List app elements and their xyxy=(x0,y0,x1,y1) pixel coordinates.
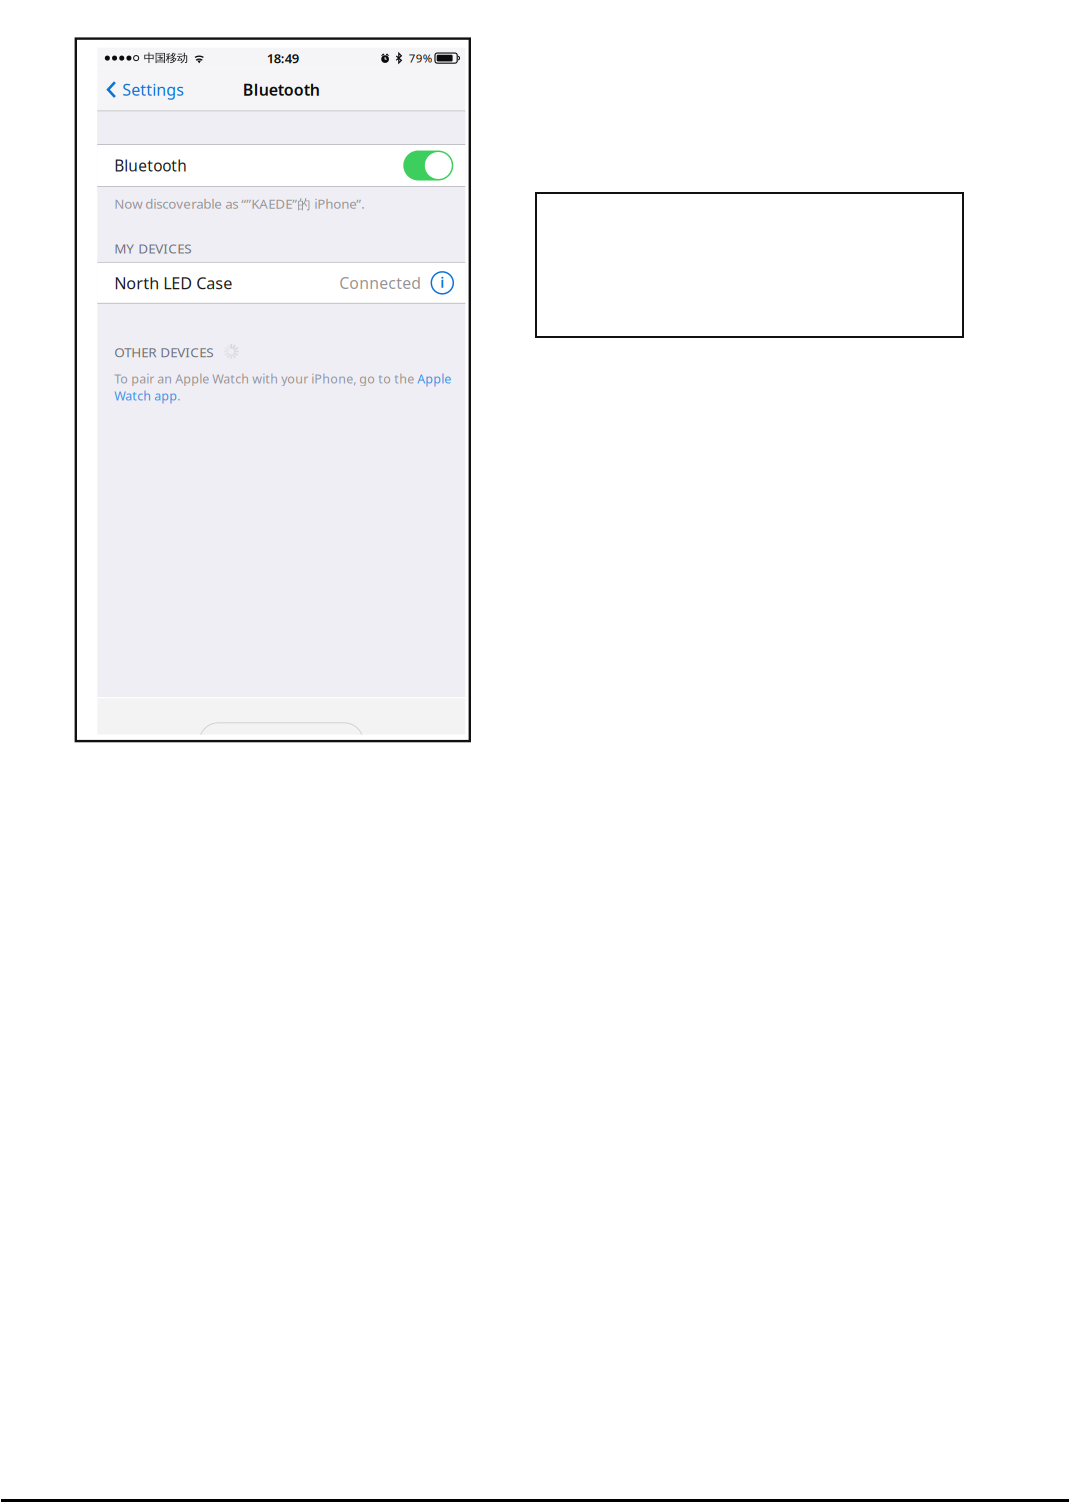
button[interactable]: Bluetooth xyxy=(97,145,465,186)
staticText: OTHER DEVICES xyxy=(114,343,213,361)
staticText: Settings xyxy=(122,79,184,100)
staticText: 中国移动 xyxy=(144,51,188,65)
staticText: i xyxy=(440,273,444,292)
staticText: Now discoverable as “”KAEDE”的 iPhone”. xyxy=(114,194,365,213)
staticText: Bluetooth xyxy=(114,155,187,176)
staticText: 79% xyxy=(409,50,433,66)
staticText: Bluetooth xyxy=(243,79,320,100)
button[interactable]: Settings xyxy=(97,69,193,110)
staticText: North LED Case xyxy=(114,272,232,294)
staticText: To pair an Apple Watch with your iPhone,… xyxy=(114,370,451,404)
button[interactable]: To pair an Apple Watch with your iPhone,… xyxy=(114,370,458,404)
staticText: Connected xyxy=(339,272,421,294)
staticText: 18:49 xyxy=(267,49,299,67)
staticText: MY DEVICES xyxy=(114,239,191,257)
button[interactable]: North LED Case xyxy=(97,263,465,303)
